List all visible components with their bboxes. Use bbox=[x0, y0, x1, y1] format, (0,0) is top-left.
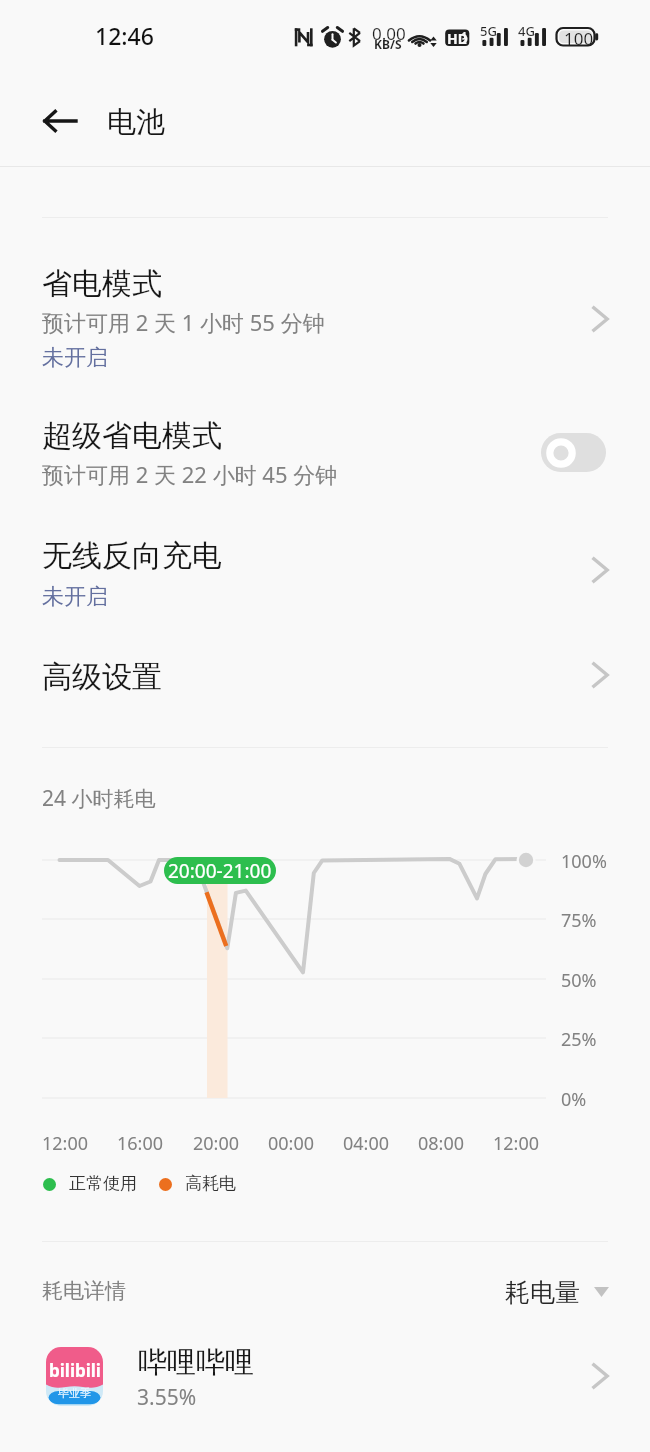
staticText: 电池 bbox=[107, 104, 165, 141]
staticText: 耗电详情 bbox=[42, 1278, 126, 1304]
staticText: KB/S bbox=[374, 36, 402, 52]
button[interactable]: 耗电量 bbox=[495, 1268, 623, 1316]
staticText: 哔哩哔哩 bbox=[138, 1344, 254, 1381]
button[interactable]: Toggle super power saving bbox=[541, 433, 606, 472]
button[interactable] bbox=[0, 246, 650, 370]
staticText: bilibili bbox=[49, 1359, 101, 1382]
other: Open bbox=[574, 293, 626, 345]
staticText: 3.55% bbox=[137, 1383, 197, 1412]
staticText: HD bbox=[447, 29, 468, 48]
staticText: 20:00-21:00 bbox=[168, 858, 272, 884]
staticText: 预计可用 2 天 1 小时 55 分钟 bbox=[42, 307, 325, 337]
staticText: 100% bbox=[561, 849, 607, 874]
staticText: 1 bbox=[462, 29, 467, 40]
staticText: 12:00 bbox=[493, 1131, 540, 1156]
staticText: 未开启 bbox=[42, 344, 108, 372]
button[interactable] bbox=[0, 518, 650, 616]
staticText: 超级省电模式 bbox=[42, 417, 222, 455]
staticText: 08:00 bbox=[418, 1131, 465, 1156]
staticText: 04:00 bbox=[343, 1131, 390, 1156]
staticText: 高级设置 bbox=[42, 658, 162, 696]
staticText: 省电模式 bbox=[42, 265, 162, 303]
staticText: 4G bbox=[518, 22, 535, 40]
staticText: 20:00 bbox=[193, 1131, 240, 1156]
staticText: 25% bbox=[561, 1027, 597, 1052]
staticText: 100 bbox=[564, 27, 594, 50]
staticText: 5G bbox=[480, 22, 497, 40]
staticText: 未开启 bbox=[42, 583, 108, 611]
staticText: 高耗电 bbox=[185, 1173, 236, 1194]
staticText: 00:00 bbox=[268, 1131, 315, 1156]
button[interactable] bbox=[0, 398, 650, 496]
button[interactable]: Back bbox=[33, 95, 85, 147]
button[interactable] bbox=[0, 1328, 650, 1428]
staticText: 75% bbox=[561, 908, 597, 933]
staticText: 2 bbox=[462, 35, 467, 46]
staticText: 无线反向充电 bbox=[42, 537, 222, 575]
staticText: 12:46 bbox=[95, 20, 154, 51]
staticText: 12:00 bbox=[42, 1131, 89, 1156]
staticText: 24 小时耗电 bbox=[42, 784, 156, 813]
staticText: 16:00 bbox=[117, 1131, 164, 1156]
other: Open bbox=[574, 649, 626, 701]
staticText: 正常使用 bbox=[69, 1173, 137, 1194]
staticText: 0% bbox=[561, 1087, 587, 1112]
other: Open bbox=[574, 544, 626, 596]
staticText: 毕业季 bbox=[58, 1386, 91, 1400]
staticText: 预计可用 2 天 22 小时 45 分钟 bbox=[42, 459, 338, 489]
staticText: 50% bbox=[561, 968, 597, 993]
button[interactable] bbox=[0, 639, 650, 713]
staticText: 耗电量 bbox=[505, 1277, 580, 1308]
staticText: 0.00 bbox=[372, 22, 406, 45]
